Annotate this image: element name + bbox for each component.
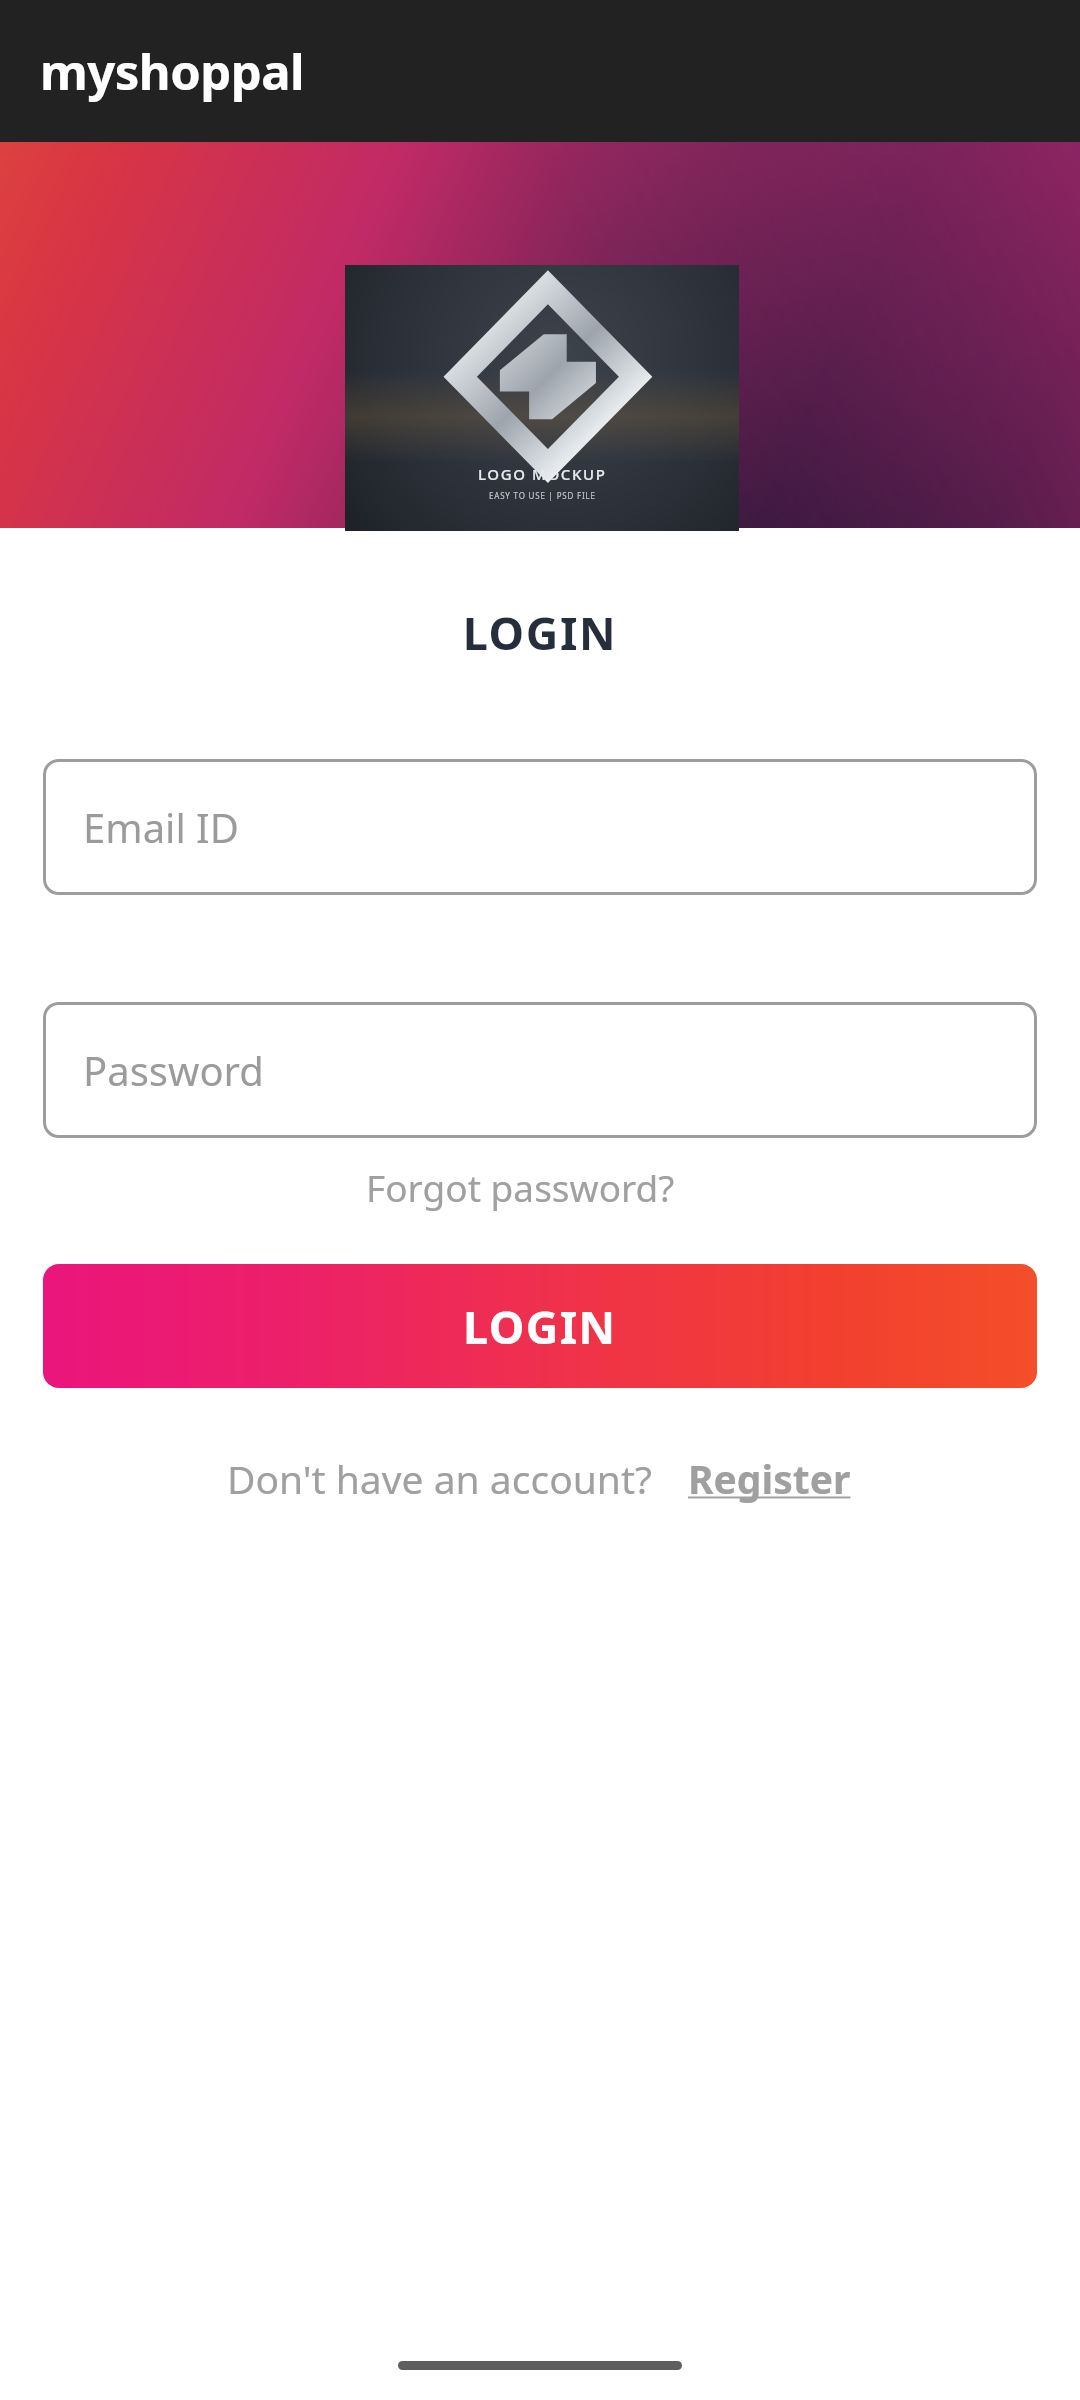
button[interactable]: Register xyxy=(686,1448,853,1509)
button[interactable]: LOGIN xyxy=(43,1264,1037,1388)
button[interactable]: Forgot password? xyxy=(356,1154,685,1220)
staticText: Register xyxy=(688,1452,851,1505)
staticText: Email ID xyxy=(83,800,239,854)
staticText: Don't have an account? xyxy=(227,1452,652,1505)
staticText: LOGIN xyxy=(0,602,1080,663)
button[interactable]: Password xyxy=(43,1002,1037,1138)
staticText: Forgot password? xyxy=(366,1162,675,1212)
staticText: myshoppal xyxy=(40,38,305,105)
staticText: LOGIN xyxy=(463,1296,617,1357)
staticText: EASY TO USE | PSD FILE xyxy=(489,490,596,501)
staticText: Password xyxy=(83,1043,264,1097)
button[interactable]: Email ID xyxy=(43,759,1037,895)
staticText: LOGO MOCKUP xyxy=(478,464,607,484)
